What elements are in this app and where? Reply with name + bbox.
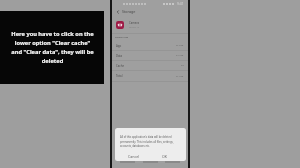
- staticText: Cancel: [128, 154, 140, 159]
- staticText: 27.7 MB: [176, 75, 184, 78]
- staticText: All of this application's data will be d…: [120, 135, 174, 147]
- button[interactable]: Back: [115, 9, 121, 15]
- button[interactable]: Data: [112, 51, 188, 61]
- staticText: OK: [162, 154, 168, 159]
- button[interactable]: Camera: [112, 16, 188, 33]
- staticText: Camera: [129, 21, 140, 25]
- staticText: version 1.0: [129, 26, 140, 29]
- staticText: Here you have to click on the lower opti…: [11, 30, 94, 65]
- button[interactable]: Cache: [112, 61, 188, 71]
- staticText: 9:41: [177, 1, 184, 6]
- staticText: App: [116, 44, 122, 48]
- staticText: Data: [116, 54, 123, 58]
- staticText: Storage: [122, 9, 136, 14]
- button[interactable]: Cancel: [126, 152, 142, 161]
- staticText: 24.5 MB: [176, 44, 184, 47]
- button[interactable]: App: [112, 41, 188, 51]
- staticText: Cache: [116, 64, 124, 68]
- staticText: Storage used: [115, 36, 129, 39]
- button[interactable]: Total: [112, 71, 188, 82]
- staticText: Total: [116, 74, 123, 78]
- staticText: 0 B: [181, 64, 184, 67]
- staticText: 3.21 MB: [176, 54, 184, 57]
- button[interactable]: OK: [160, 152, 170, 161]
